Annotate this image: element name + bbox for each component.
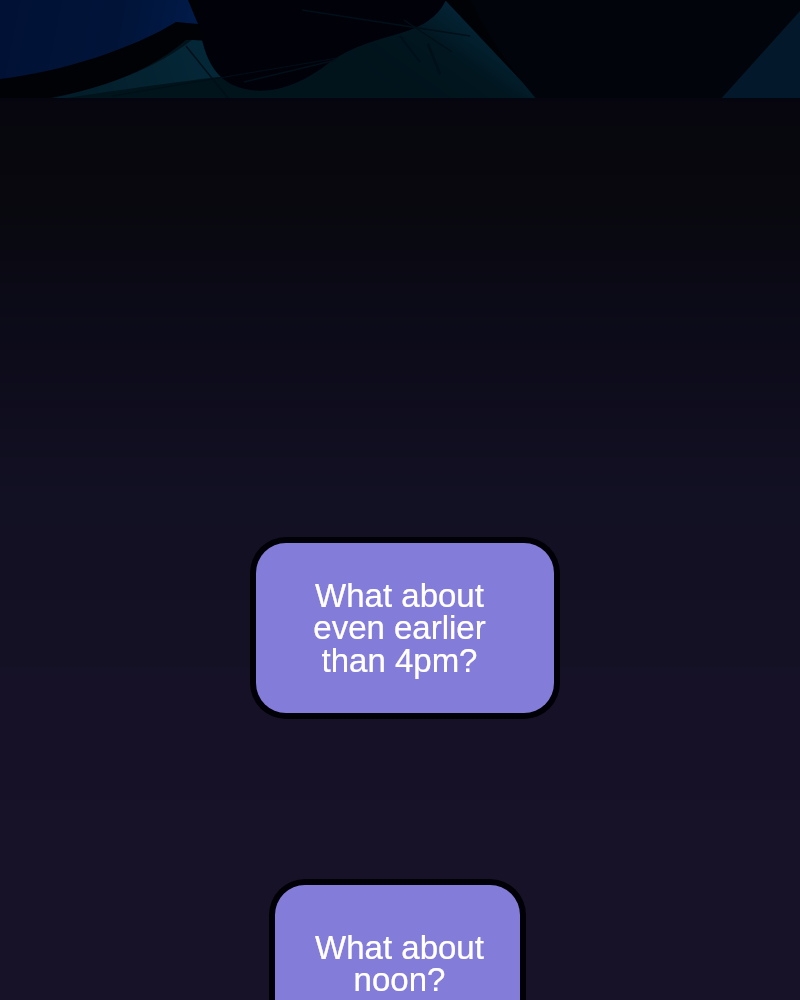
- staticText: What about noon?: [315, 929, 484, 998]
- button[interactable]: [256, 543, 554, 713]
- staticText: What about even earlier than 4pm?: [313, 577, 486, 679]
- button[interactable]: [275, 885, 520, 1000]
